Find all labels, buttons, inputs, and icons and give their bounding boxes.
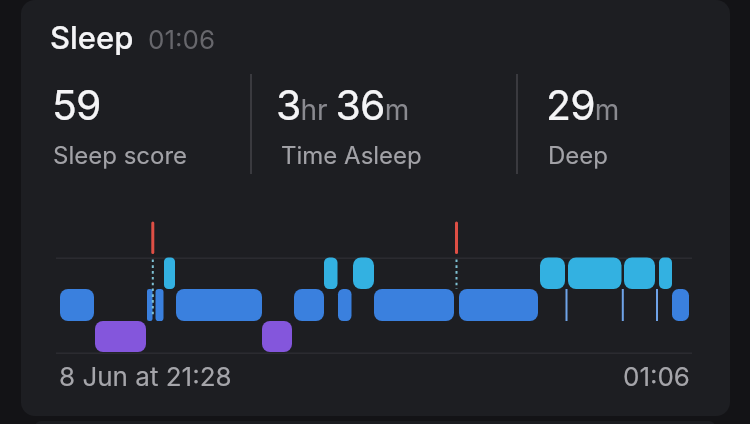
staticText: Sleep 01:06 <box>50 19 216 57</box>
staticText: 29m <box>546 80 620 130</box>
staticText: 59 <box>52 80 101 130</box>
staticText: 8 Jun at 21:28 <box>59 361 232 392</box>
staticText: Time Asleep <box>281 141 422 170</box>
staticText: 01:06 <box>623 361 690 392</box>
staticText: 3hr 36m <box>276 80 410 130</box>
staticText: Deep <box>548 141 608 170</box>
staticText: Sleep score <box>53 141 188 170</box>
button[interactable]: Sleep 01:06 <box>21 0 730 416</box>
